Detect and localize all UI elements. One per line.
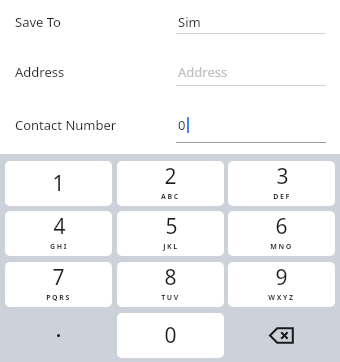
staticText: WXYZ [268, 293, 295, 303]
staticText: 1 [52, 169, 65, 198]
staticText: ABC [161, 192, 180, 202]
staticText: 3 [276, 162, 289, 191]
button[interactable] [5, 313, 112, 358]
staticText: Contact Number [15, 116, 117, 134]
button[interactable]: 1 [5, 161, 112, 206]
button[interactable]: 7 [5, 262, 112, 307]
button[interactable]: Backspace [228, 313, 335, 358]
button[interactable]: 8 [117, 262, 224, 307]
staticText: 5 [165, 212, 178, 241]
button[interactable]: 2 [117, 161, 224, 206]
button[interactable]: 6 [228, 211, 335, 256]
staticText: Sim [178, 13, 201, 31]
staticText: 4 [53, 212, 66, 241]
staticText: Save To [15, 13, 61, 31]
button[interactable]: 3 [228, 161, 335, 206]
staticText: Address [15, 63, 65, 81]
button[interactable]: 4 [5, 211, 112, 256]
staticText: GHI [50, 242, 68, 252]
button[interactable]: 0 [117, 313, 224, 358]
staticText: JKL [163, 242, 179, 252]
staticText: MNO [270, 242, 293, 252]
staticText: 9 [275, 263, 288, 292]
staticText: DEF [273, 192, 291, 202]
staticText: 8 [164, 263, 177, 292]
staticText: TUV [161, 293, 180, 303]
button[interactable]: 9 [228, 262, 335, 307]
staticText: PQRS [46, 293, 71, 303]
staticText: 7 [52, 263, 65, 292]
staticText: Address [178, 63, 228, 81]
staticText: 0 [164, 321, 177, 350]
staticText: 0 [178, 116, 186, 134]
button[interactable]: 5 [117, 211, 224, 256]
staticText: 2 [164, 162, 177, 191]
staticText: 6 [275, 212, 288, 241]
